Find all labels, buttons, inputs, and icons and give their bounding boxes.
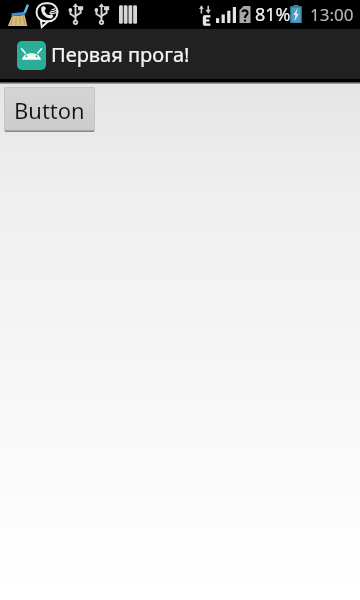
button[interactable]: App icon, navigate home bbox=[0, 29, 360, 79]
staticText: 81% bbox=[255, 2, 291, 27]
button[interactable]: Button bbox=[4, 87, 95, 132]
other: App icon, navigate home bbox=[17, 41, 46, 70]
staticText: 13:00 bbox=[310, 3, 354, 26]
staticText: Первая прога! bbox=[51, 41, 190, 68]
staticText: Button bbox=[14, 95, 85, 125]
